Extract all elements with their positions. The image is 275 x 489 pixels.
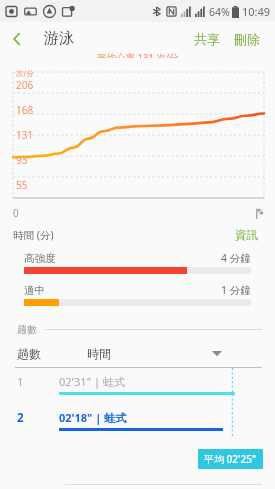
button[interactable]: 適中 — [0, 283, 275, 306]
staticText: 168 — [16, 103, 34, 117]
staticText: 10:49 — [242, 4, 271, 19]
staticText: 4 分鐘 — [221, 251, 251, 265]
staticText: 1 — [17, 374, 24, 390]
staticText: 共享 — [194, 31, 220, 47]
staticText: 趟數 — [17, 346, 41, 361]
staticText: 刪除 — [234, 31, 260, 47]
button[interactable]: 資訊 — [231, 225, 262, 245]
staticText: 趟數 — [17, 323, 37, 336]
staticText: 適中 — [24, 284, 45, 297]
staticText: 高強度 — [24, 252, 56, 265]
staticText: 1 分鐘 — [221, 283, 251, 297]
staticText: 02'31" | 蛙式 — [59, 374, 125, 389]
staticText: 64% — [209, 5, 230, 19]
staticText: 資訊 — [235, 228, 258, 242]
staticText: 時間 (分) — [13, 228, 54, 242]
staticText: 206 — [16, 78, 34, 92]
staticText: 55 — [16, 178, 28, 192]
staticText: 游泳 — [44, 29, 74, 48]
button[interactable]: 高強度 — [0, 251, 275, 274]
button[interactable]: 共享 — [187, 25, 227, 53]
button[interactable]: 刪除 — [227, 25, 267, 53]
staticText: 2 — [17, 410, 24, 426]
staticText: 0 — [13, 206, 19, 220]
button[interactable]: 趟數 — [0, 340, 275, 367]
button[interactable]: 平均 02'25" — [198, 449, 263, 469]
staticText: 131 — [16, 128, 34, 142]
staticText: 平均心率 131 次/分 — [97, 51, 179, 58]
staticText: 時間 — [87, 346, 111, 361]
staticText: 健身詳情 — [17, 483, 57, 485]
staticText: 93 — [16, 153, 28, 167]
staticText: 02'18" | 蛙式 — [59, 410, 127, 425]
button[interactable]: 1 — [0, 368, 275, 395]
staticText: 次/分 — [16, 68, 34, 78]
button[interactable]: 2 — [0, 404, 275, 431]
staticText: 平均 02'25" — [204, 452, 257, 466]
button[interactable]: Back — [0, 22, 34, 55]
